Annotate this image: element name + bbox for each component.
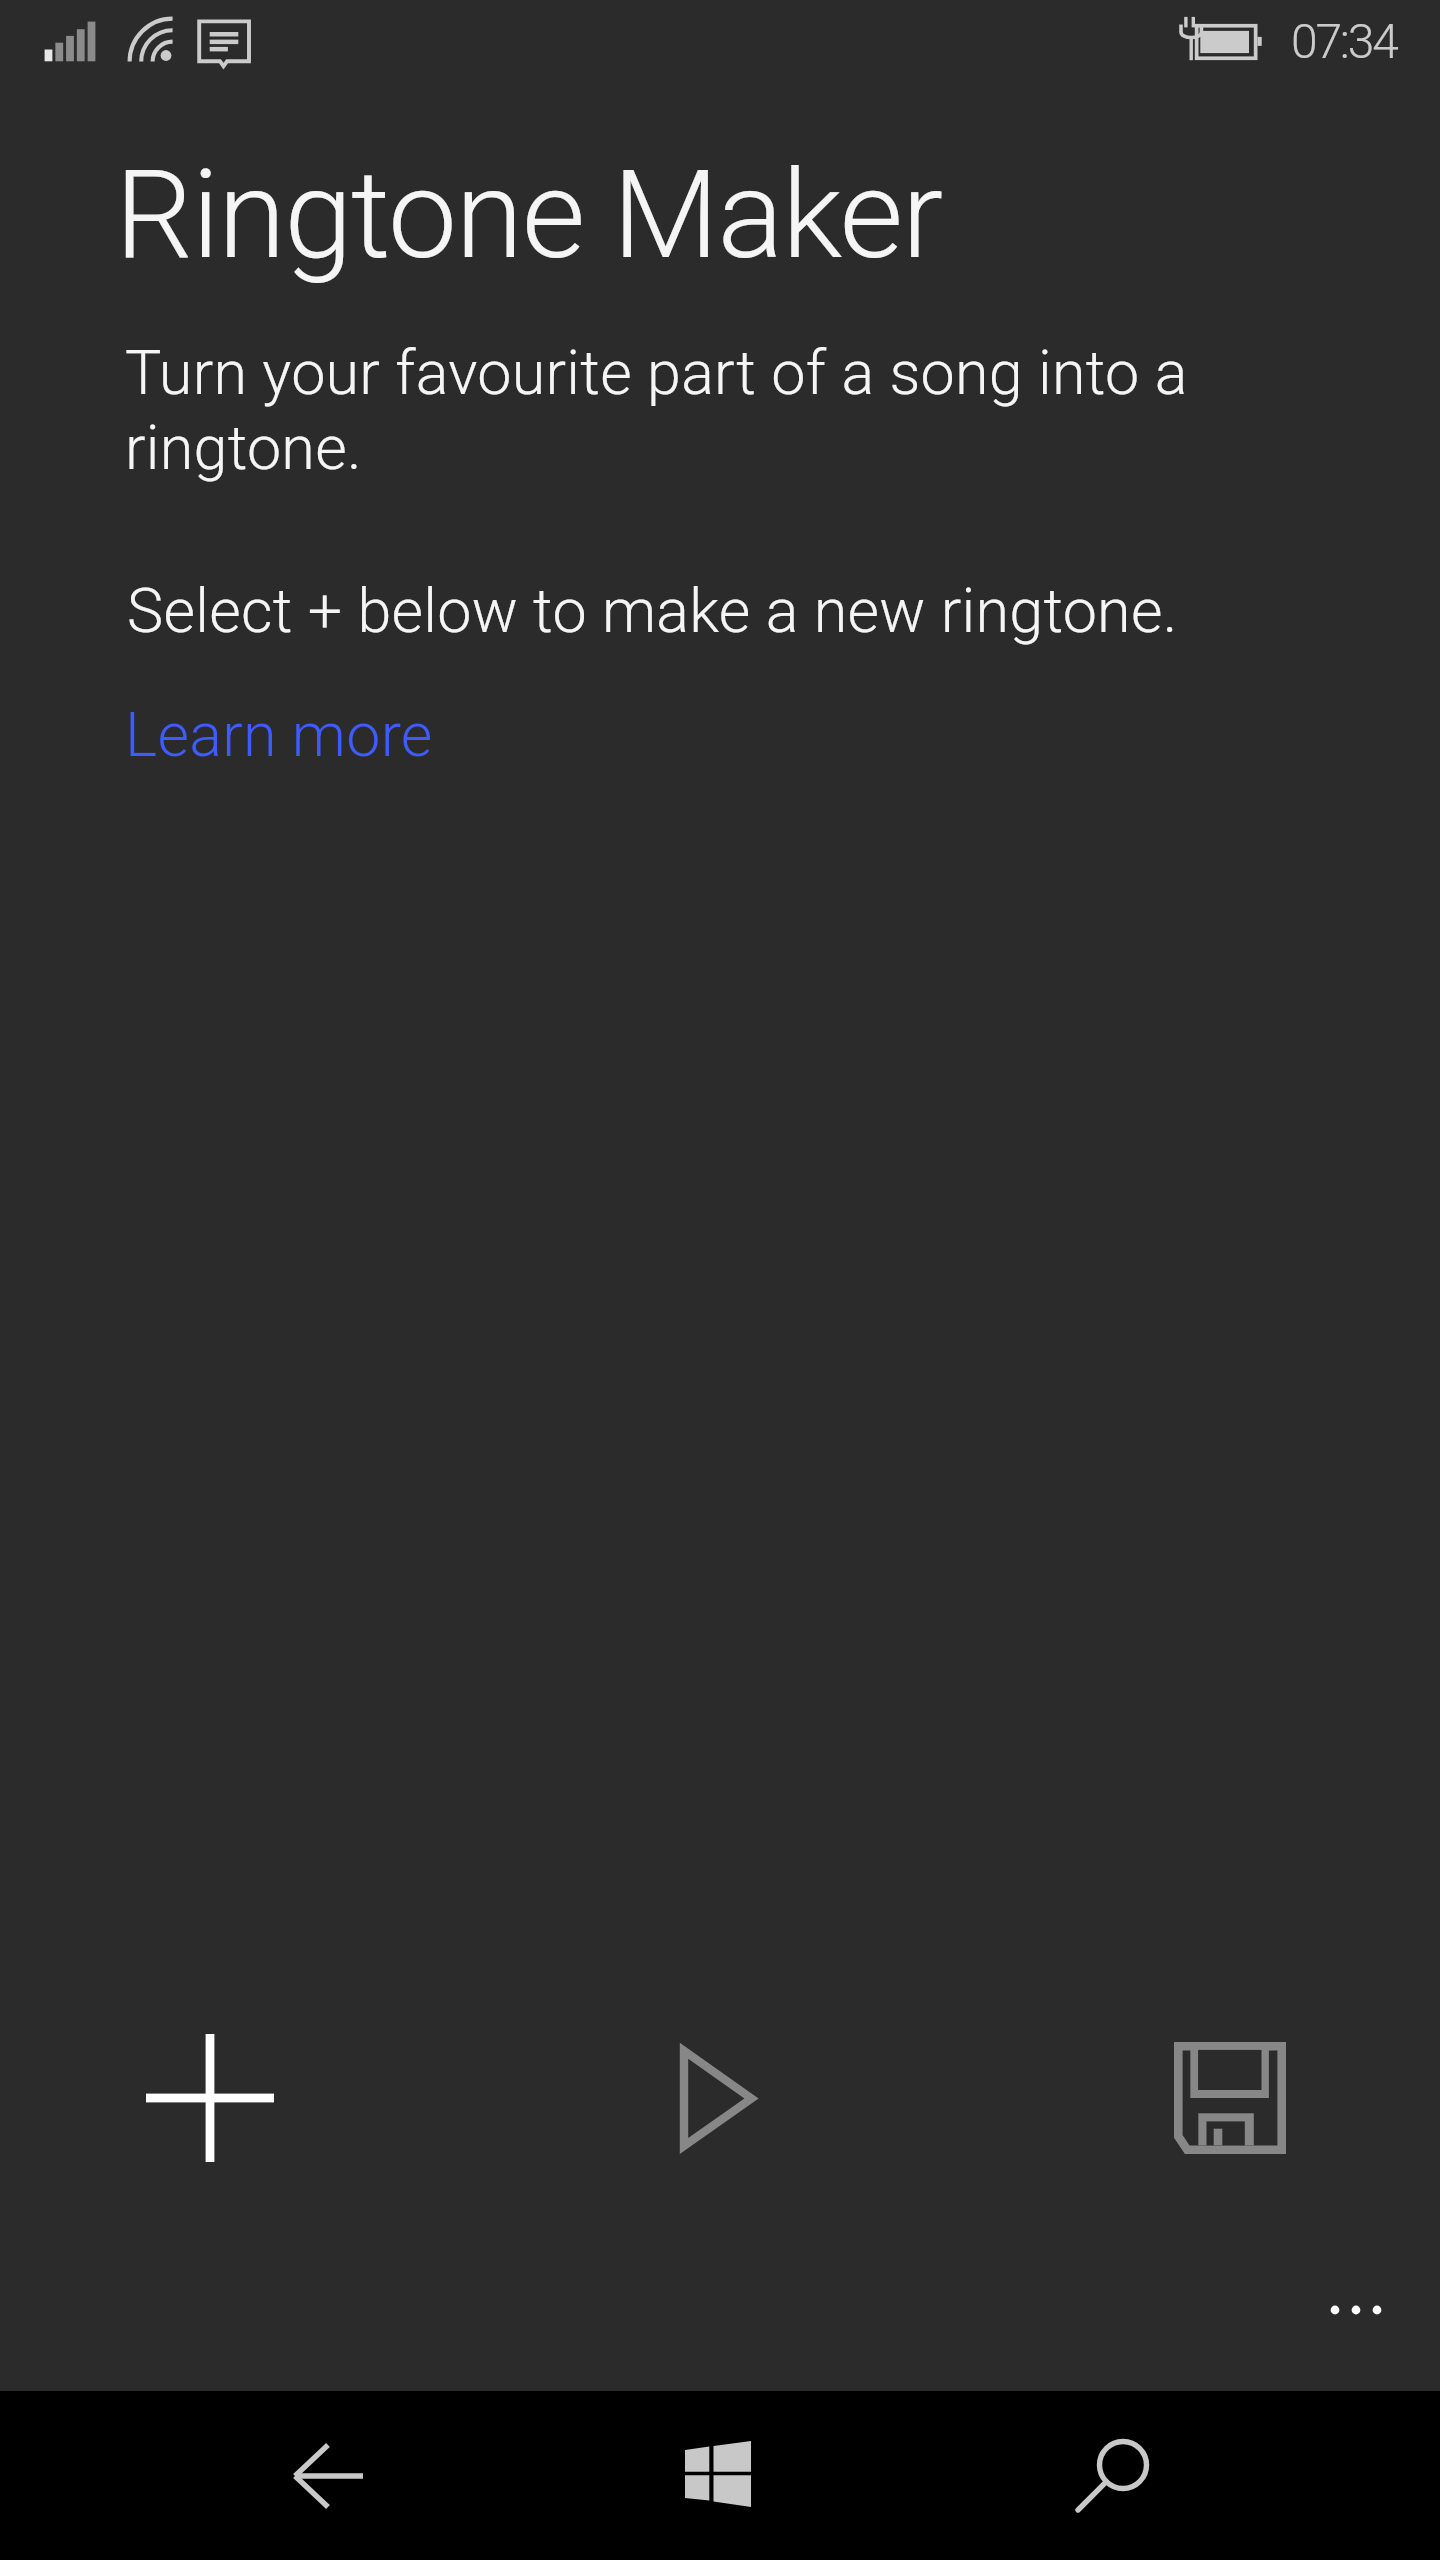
button[interactable]: Search — [1060, 2425, 1160, 2525]
button[interactable]: More options — [1327, 2294, 1385, 2326]
button[interactable]: Play — [660, 2025, 780, 2170]
staticText: 07:34 — [1291, 13, 1397, 69]
button[interactable]: Learn more — [125, 699, 433, 770]
button[interactable]: Start — [685, 2441, 751, 2507]
staticText: Select + below to make a new ringtone. — [127, 575, 1178, 646]
staticText: Learn more — [125, 699, 433, 770]
button[interactable]: Save — [1174, 2042, 1286, 2154]
staticText: Ringtone Maker — [115, 143, 942, 287]
staticText: Turn your favourite part of a song into … — [125, 337, 1245, 484]
button[interactable]: New ringtone — [146, 2034, 274, 2162]
button[interactable]: Back — [268, 2431, 388, 2521]
